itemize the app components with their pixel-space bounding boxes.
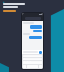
button[interactable]: Sent message [29, 36, 42, 39]
button[interactable]: Sent message [33, 30, 42, 32]
button[interactable]: Sent message [30, 25, 42, 29]
button[interactable]: Send [39, 51, 42, 54]
button[interactable]: Conversation header [22, 13, 43, 21]
button[interactable]: Get started [3, 10, 16, 12]
